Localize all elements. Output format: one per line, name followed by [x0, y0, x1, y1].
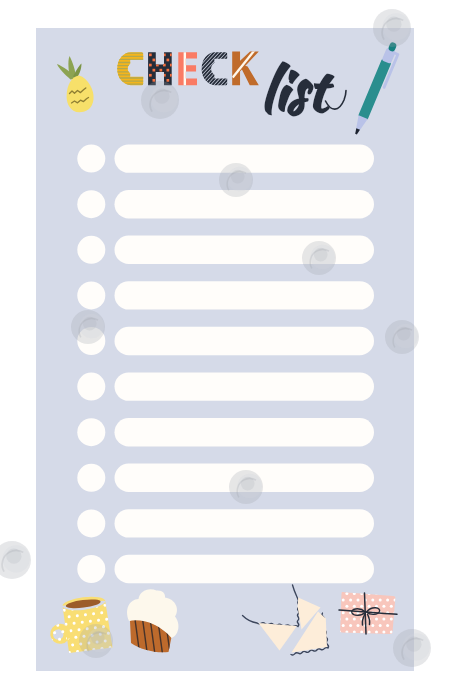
staticText: list [259, 49, 326, 132]
button[interactable]: Check list planner page [0, 0, 451, 700]
